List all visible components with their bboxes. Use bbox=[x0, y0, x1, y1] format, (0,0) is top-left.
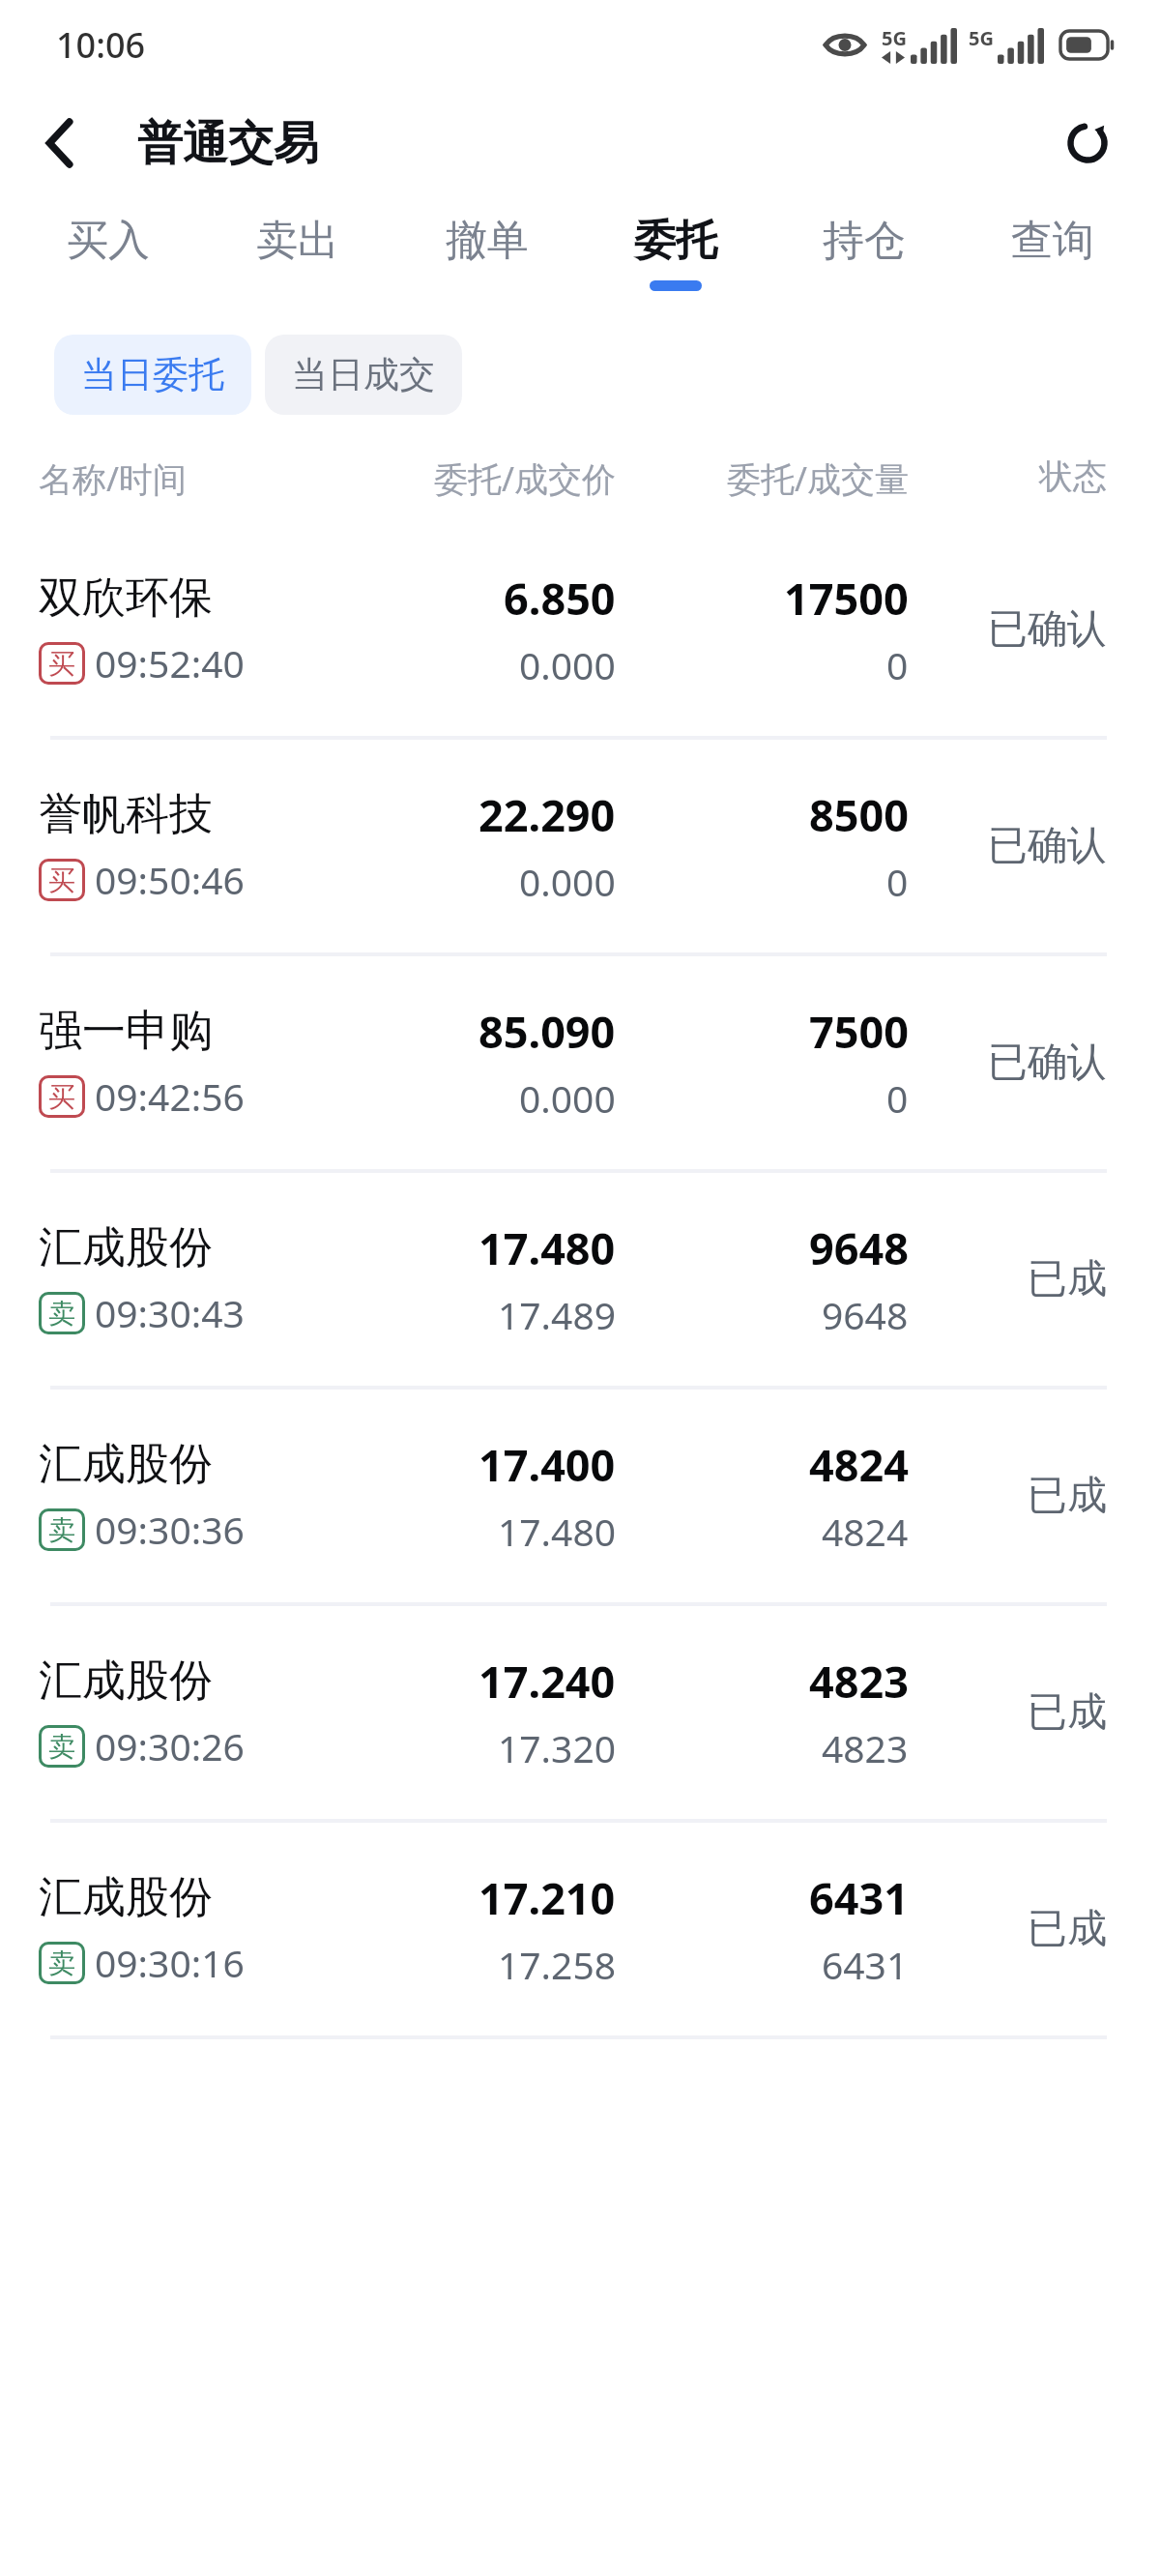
staticText: 17.210 bbox=[478, 1868, 616, 1927]
staticText: 汇成股份 bbox=[39, 1437, 213, 1492]
staticText: 0 bbox=[886, 639, 909, 690]
staticText: 买 bbox=[48, 1080, 75, 1114]
staticText: 7500 bbox=[809, 1002, 909, 1061]
button[interactable]: 持仓 bbox=[769, 197, 958, 311]
button[interactable]: 委托 bbox=[581, 197, 769, 311]
staticText: 已确认 bbox=[988, 821, 1107, 871]
staticText: 双欣环保 bbox=[39, 571, 213, 626]
staticText: 汇成股份 bbox=[39, 1220, 213, 1275]
staticText: 已确认 bbox=[988, 604, 1107, 655]
staticText: 名称/时间 bbox=[39, 455, 367, 502]
staticText: 委托/成交价 bbox=[367, 455, 616, 502]
staticText: 17.400 bbox=[478, 1435, 616, 1494]
button[interactable]: Refresh bbox=[1044, 100, 1131, 187]
button[interactable]: 强一申购 bbox=[0, 956, 1160, 1169]
staticText: 卖 bbox=[48, 1513, 75, 1547]
staticText: 09:30:16 bbox=[95, 1937, 245, 1988]
staticText: 6.850 bbox=[504, 569, 616, 628]
staticText: 当日委托 bbox=[81, 352, 224, 397]
staticText: 卖 bbox=[48, 1297, 75, 1331]
button[interactable]: 卖出 bbox=[203, 197, 392, 311]
staticText: 已成 bbox=[1028, 1254, 1107, 1304]
staticText: 8500 bbox=[809, 785, 909, 844]
button[interactable]: 汇成股份 bbox=[0, 1606, 1160, 1819]
staticText: 撤单 bbox=[446, 215, 529, 267]
staticText: 卖 bbox=[48, 1947, 75, 1980]
staticText: 4823 bbox=[822, 1722, 909, 1773]
staticText: 0 bbox=[886, 1072, 909, 1124]
staticText: 22.290 bbox=[478, 785, 616, 844]
staticText: 强一申购 bbox=[39, 1004, 213, 1059]
button[interactable]: 汇成股份 bbox=[0, 1173, 1160, 1386]
staticText: 卖出 bbox=[256, 215, 339, 267]
staticText: 6431 bbox=[809, 1868, 909, 1927]
staticText: 已确认 bbox=[988, 1038, 1107, 1088]
staticText: 汇成股份 bbox=[39, 1654, 213, 1709]
staticText: 09:52:40 bbox=[95, 637, 245, 688]
staticText: 17.258 bbox=[498, 1939, 616, 1990]
staticText: 85.090 bbox=[478, 1002, 616, 1061]
staticText: 已成 bbox=[1028, 1687, 1107, 1738]
button[interactable]: 撤单 bbox=[392, 197, 581, 311]
staticText: 09:30:26 bbox=[95, 1720, 245, 1771]
staticText: 卖 bbox=[48, 1730, 75, 1764]
staticText: 6431 bbox=[822, 1939, 909, 1990]
staticText: 5G bbox=[882, 25, 907, 51]
button[interactable]: 当日成交 bbox=[265, 335, 462, 415]
staticText: 0.000 bbox=[519, 639, 616, 690]
staticText: 委托 bbox=[634, 215, 717, 267]
staticText: 查询 bbox=[1011, 215, 1094, 267]
staticText: 汇成股份 bbox=[39, 1870, 213, 1925]
staticText: 17500 bbox=[784, 569, 909, 628]
button[interactable]: 双欣环保 bbox=[0, 523, 1160, 736]
staticText: 0.000 bbox=[519, 1072, 616, 1124]
staticText: 持仓 bbox=[823, 215, 906, 267]
staticText: 誉帆科技 bbox=[39, 787, 213, 842]
staticText: 17.480 bbox=[498, 1506, 616, 1557]
button[interactable]: 当日委托 bbox=[54, 335, 251, 415]
staticText: 已成 bbox=[1028, 1904, 1107, 1954]
staticText: 17.480 bbox=[478, 1218, 616, 1277]
staticText: 4823 bbox=[809, 1652, 909, 1711]
button[interactable]: 汇成股份 bbox=[0, 1823, 1160, 2035]
staticText: 委托/成交量 bbox=[660, 455, 909, 502]
button[interactable]: Back bbox=[17, 101, 102, 186]
staticText: 5G bbox=[969, 25, 994, 51]
staticText: 当日成交 bbox=[292, 352, 435, 397]
staticText: 已成 bbox=[1028, 1471, 1107, 1521]
staticText: 4824 bbox=[809, 1435, 909, 1494]
staticText: 17.240 bbox=[478, 1652, 616, 1711]
staticText: 0.000 bbox=[519, 856, 616, 907]
staticText: 0 bbox=[886, 856, 909, 907]
button[interactable]: 汇成股份 bbox=[0, 1390, 1160, 1602]
staticText: 普通交易 bbox=[137, 115, 319, 172]
staticText: 买入 bbox=[67, 215, 150, 267]
staticText: 17.320 bbox=[498, 1722, 616, 1773]
staticText: 9648 bbox=[822, 1289, 909, 1340]
staticText: 17.489 bbox=[498, 1289, 616, 1340]
staticText: 4824 bbox=[822, 1506, 909, 1557]
staticText: 买 bbox=[48, 864, 75, 897]
staticText: 09:30:43 bbox=[95, 1287, 245, 1338]
staticText: 09:50:46 bbox=[95, 854, 245, 905]
staticText: 买 bbox=[48, 647, 75, 681]
staticText: 9648 bbox=[809, 1218, 909, 1277]
staticText: 10:06 bbox=[56, 21, 146, 69]
button[interactable]: 买入 bbox=[14, 197, 203, 311]
staticText: 09:30:36 bbox=[95, 1504, 245, 1555]
staticText: 状态 bbox=[909, 455, 1107, 498]
button[interactable]: 查询 bbox=[958, 197, 1146, 311]
button[interactable]: 誉帆科技 bbox=[0, 740, 1160, 952]
staticText: 09:42:56 bbox=[95, 1070, 245, 1122]
